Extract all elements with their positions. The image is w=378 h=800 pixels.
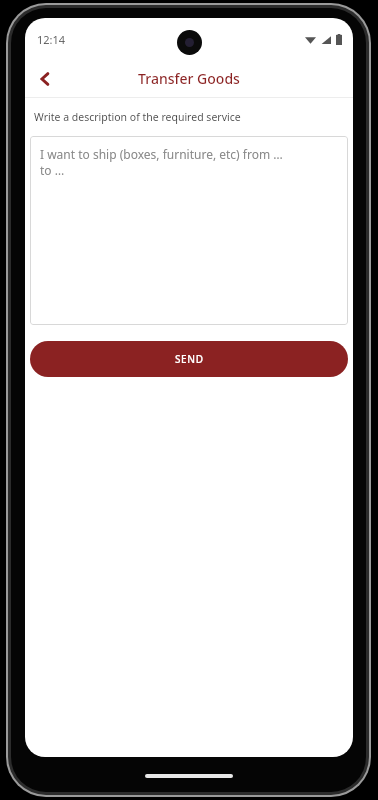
- button[interactable]: I want to ship (boxes, furniture, etc) f…: [30, 136, 348, 325]
- staticText: 12:14: [37, 32, 66, 47]
- staticText: SEND: [175, 352, 204, 366]
- staticText: I want to ship (boxes, furniture, etc) f…: [40, 146, 283, 179]
- button[interactable]: Back: [25, 60, 65, 97]
- staticText: Transfer Goods: [138, 69, 240, 88]
- button[interactable]: SEND: [30, 341, 348, 377]
- staticText: Write a description of the required serv…: [34, 110, 241, 124]
